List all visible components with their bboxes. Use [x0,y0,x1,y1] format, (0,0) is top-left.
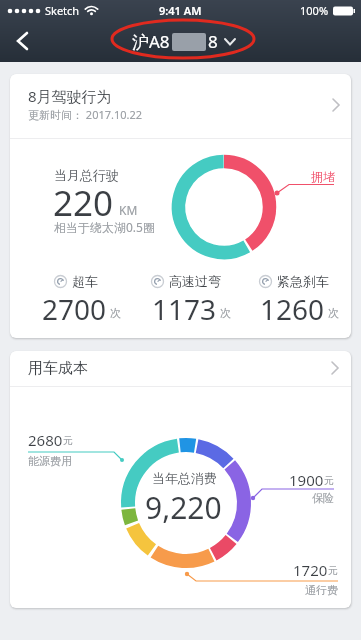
button[interactable] [0,20,44,62]
staticText: 当年总消费 [152,470,217,486]
staticText: 超车 [72,273,98,289]
staticText: 通行费 [305,583,338,597]
staticText: 元 [328,564,338,577]
staticText: 紧急刹车 [277,273,329,289]
staticText: 8 [208,30,218,53]
staticText: 能源费用 [28,454,72,468]
staticText: KM [119,202,138,218]
button[interactable]: 用车成本 [10,351,351,608]
staticText: 1720 [293,560,328,580]
button[interactable]: 沪A8 [132,30,236,53]
staticText: 次 [328,306,339,320]
staticText: 次 [110,306,121,320]
staticText: 沪A8 [132,30,170,53]
staticText: 高速过弯 [169,273,221,289]
staticText: 1900 [289,470,324,490]
button[interactable]: 8月驾驶行为 [10,74,351,338]
staticText: 元 [63,434,73,447]
staticText: 保险 [312,491,334,505]
staticText: 元 [324,474,334,487]
staticText: 8月驾驶行为 [28,86,112,106]
staticText: 用车成本 [28,359,88,378]
staticText: 更新时间： 2017.10.22 [28,107,143,122]
staticText: 9:41 AM [159,3,202,18]
staticText: 拥堵 [311,169,335,184]
staticText: Sketch [45,3,80,18]
staticText: 1260 [260,290,325,328]
staticText: 次 [220,306,231,320]
staticText: 2700 [42,290,107,328]
staticText: 100% [300,3,329,18]
staticText: 220 [53,179,114,223]
staticText: 1173 [152,290,217,328]
staticText: 2680 [28,430,63,450]
staticText: 相当于绕太湖0.5圈 [54,219,155,235]
staticText: 当月总行驶 [54,167,119,183]
staticText: 9,220 [145,487,222,525]
